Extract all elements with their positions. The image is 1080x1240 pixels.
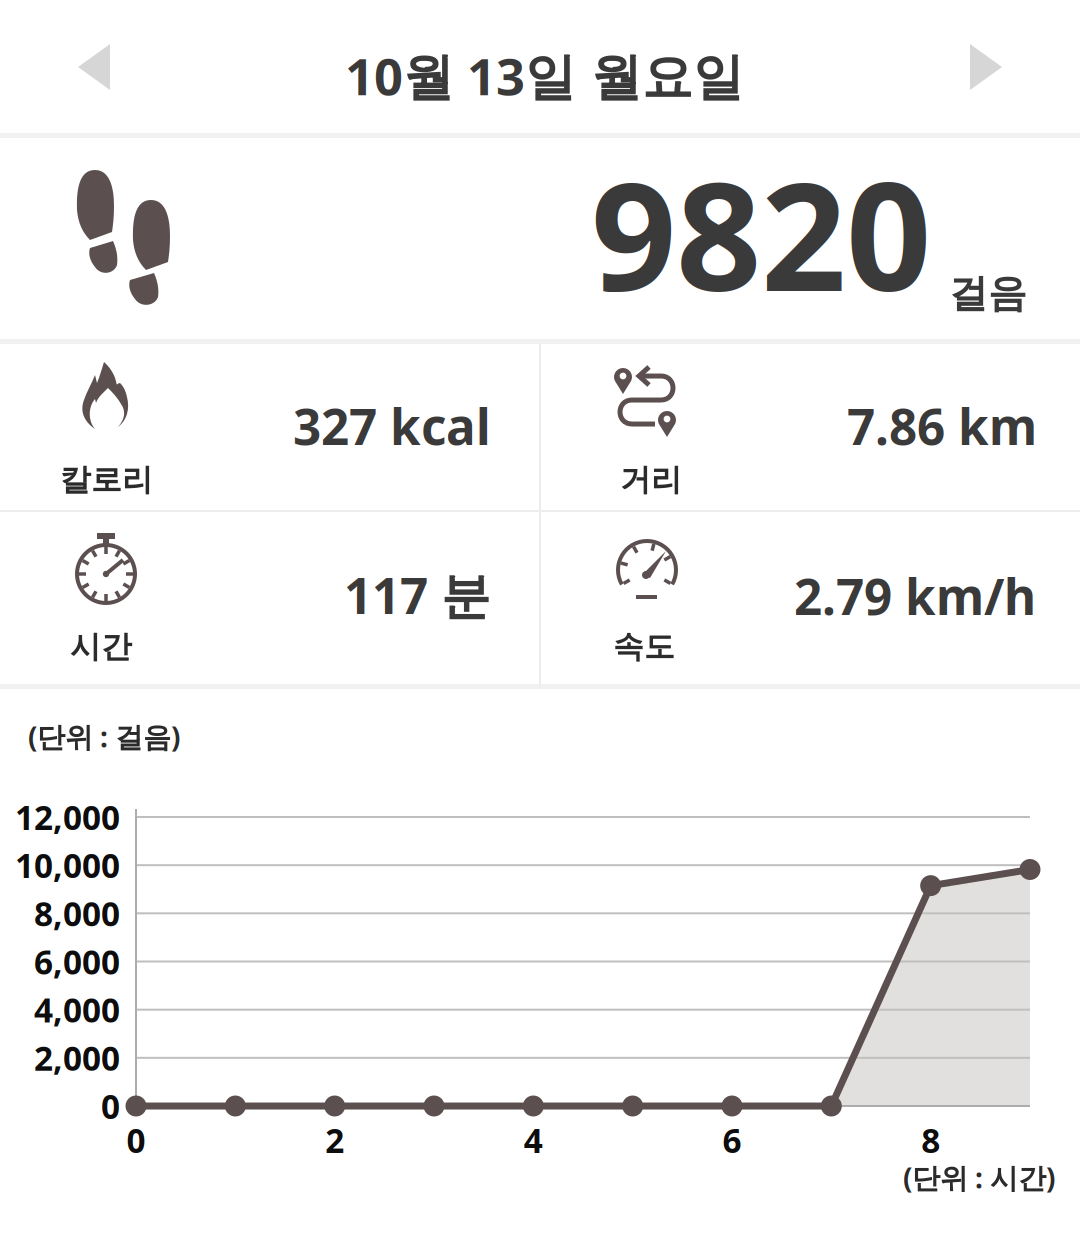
staticText: 4,000	[34, 987, 120, 1032]
staticText: 327 kcal	[293, 393, 491, 459]
staticText: (단위 : 걸음)	[28, 718, 180, 755]
staticText: (단위 : 시간)	[903, 1159, 1055, 1196]
staticText: 10월 13일 월요일	[345, 42, 744, 109]
staticText: 6,000	[34, 939, 120, 984]
staticText: 거리	[620, 461, 682, 499]
staticText: 8,000	[34, 891, 120, 935]
staticText: 시간	[70, 628, 132, 666]
button[interactable]: 다음 날짜	[890, 0, 1080, 133]
staticText: 4	[524, 1118, 543, 1162]
staticText: 10,000	[15, 843, 120, 887]
staticText: 12,000	[15, 795, 120, 839]
staticText: 7.86 km	[847, 393, 1037, 459]
staticText: 속도	[613, 628, 675, 666]
button[interactable]: 속도	[0, 0, 1036, 172]
staticText: 9820	[591, 134, 931, 332]
staticText: 걸음	[949, 270, 1027, 317]
staticText: 117 분	[344, 562, 490, 628]
staticText: 2.79 km/h	[794, 563, 1036, 629]
staticText: 8	[921, 1118, 940, 1162]
staticText: 2	[325, 1118, 344, 1162]
staticText: 0	[126, 1118, 145, 1162]
button[interactable]: 9820	[0, 0, 1080, 201]
button[interactable]: 거리	[0, 0, 1037, 166]
staticText: 6	[722, 1118, 741, 1162]
button[interactable]: 칼로리	[0, 0, 539, 166]
staticText: 0	[101, 1084, 120, 1128]
button[interactable]: 이전 날짜	[0, 0, 190, 133]
button[interactable]: 시간	[0, 0, 539, 172]
staticText: 칼로리	[60, 461, 153, 499]
staticText: 2,000	[34, 1036, 120, 1080]
